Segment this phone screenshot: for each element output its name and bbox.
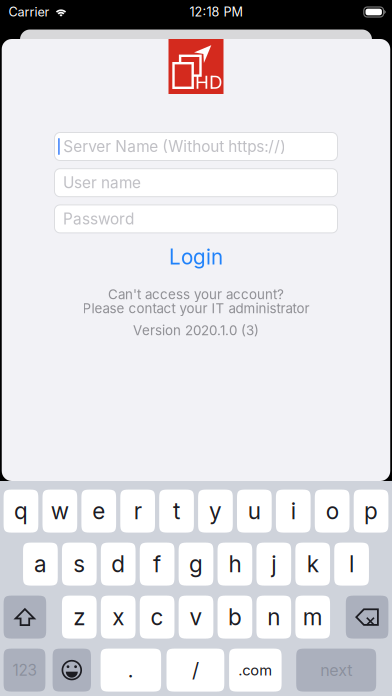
staticText: k — [307, 550, 319, 578]
button[interactable]: Password — [54, 205, 337, 233]
staticText: Can't access your account? — [108, 286, 284, 302]
staticText: . — [128, 658, 134, 682]
button[interactable]: n — [256, 596, 291, 639]
staticText: j — [271, 550, 276, 578]
staticText: i — [291, 497, 296, 525]
button[interactable]: h — [218, 543, 252, 586]
button[interactable]: p — [354, 490, 388, 533]
button[interactable]: i — [276, 490, 311, 533]
button[interactable]: Login — [111, 246, 281, 268]
staticText: t — [173, 497, 180, 525]
button[interactable]: y — [198, 490, 233, 533]
button[interactable]: a — [23, 543, 58, 586]
button[interactable]: c — [140, 596, 174, 639]
staticText: p — [364, 497, 378, 525]
button[interactable]: w — [42, 490, 77, 533]
staticText: u — [248, 497, 261, 525]
staticText: s — [73, 550, 85, 578]
staticText: e — [92, 497, 105, 525]
staticText: h — [228, 550, 241, 578]
button[interactable]: v — [179, 596, 213, 639]
staticText: r — [134, 497, 142, 525]
button[interactable]: t — [159, 490, 194, 533]
staticText: x — [112, 603, 124, 631]
button[interactable]: 123 — [4, 649, 45, 692]
staticText: Carrier — [8, 4, 49, 20]
button[interactable]: o — [315, 490, 349, 533]
staticText: f — [153, 550, 161, 578]
staticText: User name — [63, 173, 141, 192]
staticText: q — [14, 497, 28, 525]
button[interactable]: x — [101, 596, 135, 639]
button[interactable]: r — [120, 490, 155, 533]
staticText: Login — [169, 244, 223, 269]
staticText: a — [34, 550, 47, 578]
button[interactable]: k — [295, 543, 330, 586]
button[interactable]: Server Name (Without https://) — [54, 132, 337, 160]
button[interactable]: / — [166, 649, 224, 692]
button[interactable]: m — [295, 596, 330, 639]
button[interactable]: q — [4, 490, 38, 533]
staticText: w — [51, 497, 69, 525]
button[interactable]: User name — [54, 169, 337, 197]
staticText: Please contact your IT administrator — [82, 300, 309, 316]
button[interactable]: g — [179, 543, 213, 586]
button[interactable]: f — [140, 543, 174, 586]
button[interactable]: j — [256, 543, 291, 586]
staticText: l — [349, 550, 354, 578]
staticText: n — [267, 603, 280, 631]
staticText: d — [111, 550, 125, 578]
staticText: 123 — [12, 661, 36, 679]
button[interactable]: u — [237, 490, 272, 533]
button[interactable]: d — [101, 543, 136, 586]
staticText: y — [209, 497, 222, 525]
staticText: Password — [63, 210, 134, 228]
staticText: c — [151, 603, 164, 631]
staticText: Server Name (Without https://) — [63, 137, 286, 156]
button[interactable]: e — [81, 490, 116, 533]
button[interactable]: .com — [229, 649, 282, 692]
button[interactable]: b — [218, 596, 252, 639]
staticText: z — [73, 603, 85, 631]
button[interactable]: z — [62, 596, 97, 639]
button[interactable]: Delete — [346, 596, 388, 639]
staticText: 12:18 PM — [189, 4, 242, 20]
button[interactable]: s — [62, 543, 97, 586]
staticText: HD — [195, 71, 222, 93]
button[interactable]: Emoji — [53, 649, 91, 692]
staticText: b — [228, 603, 242, 631]
staticText: Version 2020.1.0 (3) — [133, 322, 259, 338]
staticText: .com — [238, 661, 272, 679]
button[interactable]: next — [296, 649, 376, 692]
button[interactable]: l — [334, 543, 369, 586]
staticText: g — [189, 550, 203, 578]
button[interactable]: . — [101, 649, 161, 692]
staticText: next — [320, 660, 352, 680]
staticText: m — [303, 603, 323, 631]
staticText: / — [192, 658, 199, 682]
staticText: o — [326, 497, 339, 525]
button[interactable]: Shift — [4, 596, 46, 639]
staticText: v — [189, 603, 202, 631]
